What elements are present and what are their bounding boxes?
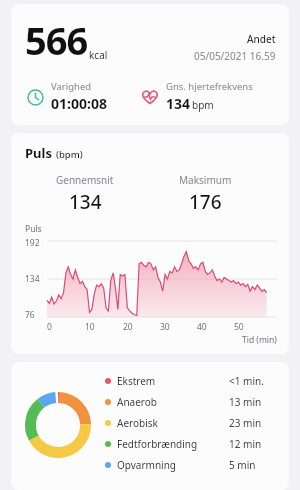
staticText: 134 bbox=[69, 189, 102, 215]
staticText: Tid (min) bbox=[242, 334, 277, 346]
staticText: Anaerob bbox=[117, 395, 229, 409]
other: Average heart rate bbox=[141, 88, 159, 106]
button[interactable]: Opvarmning bbox=[105, 458, 277, 472]
staticText: Opvarmning bbox=[117, 458, 229, 472]
staticText: 10 bbox=[85, 321, 95, 333]
staticText: 134 bbox=[166, 94, 191, 113]
staticText: 50 bbox=[234, 321, 244, 333]
staticText: <1 min. bbox=[229, 374, 264, 388]
button[interactable]: Fedtforbrænding bbox=[105, 437, 277, 451]
other: Heart rate zone distribution bbox=[25, 392, 91, 458]
staticText: Fedtforbrænding bbox=[117, 437, 229, 451]
staticText: 13 min bbox=[229, 395, 262, 409]
staticText: bpm bbox=[192, 98, 214, 112]
staticText: 5 min bbox=[229, 458, 256, 472]
staticText: 76 bbox=[25, 309, 47, 321]
staticText: 176 bbox=[189, 189, 222, 215]
button[interactable]: Aerobisk bbox=[105, 416, 277, 430]
staticText: Ekstrem bbox=[117, 374, 229, 388]
staticText: kcal bbox=[89, 48, 108, 62]
staticText: 566 bbox=[25, 14, 88, 66]
staticText: 134 bbox=[25, 273, 47, 285]
button[interactable]: Duration bbox=[25, 80, 140, 113]
staticText: Varighed bbox=[51, 80, 92, 93]
staticText: 0 bbox=[47, 321, 52, 333]
button[interactable]: 566 bbox=[11, 4, 289, 125]
staticText: Andet bbox=[247, 32, 276, 46]
staticText: Aerobisk bbox=[117, 416, 229, 430]
staticText: Puls bbox=[25, 223, 42, 235]
staticText: 05/05/2021 16.59 bbox=[194, 49, 276, 63]
staticText: Gennemsnit bbox=[56, 173, 114, 187]
staticText: 23 min bbox=[229, 416, 262, 430]
button[interactable]: Anaerob bbox=[105, 395, 277, 409]
staticText: (bpm) bbox=[56, 148, 83, 161]
staticText: 30 bbox=[160, 321, 170, 333]
staticText: 40 bbox=[197, 321, 207, 333]
staticText: 01:00:08 bbox=[51, 94, 107, 113]
staticText: 20 bbox=[123, 321, 133, 333]
button[interactable]: Heart rate zone distribution bbox=[11, 362, 289, 490]
staticText: Gns. hjertefrekvens bbox=[166, 80, 253, 93]
staticText: Puls bbox=[25, 144, 52, 162]
staticText: Maksimum bbox=[179, 173, 232, 187]
button[interactable]: Average heart rate bbox=[140, 80, 276, 113]
staticText: 192 bbox=[25, 237, 47, 249]
staticText: 12 min bbox=[229, 437, 262, 451]
button[interactable]: Ekstrem bbox=[105, 374, 277, 388]
button[interactable]: Puls bbox=[11, 133, 289, 354]
other: Duration bbox=[27, 89, 44, 106]
